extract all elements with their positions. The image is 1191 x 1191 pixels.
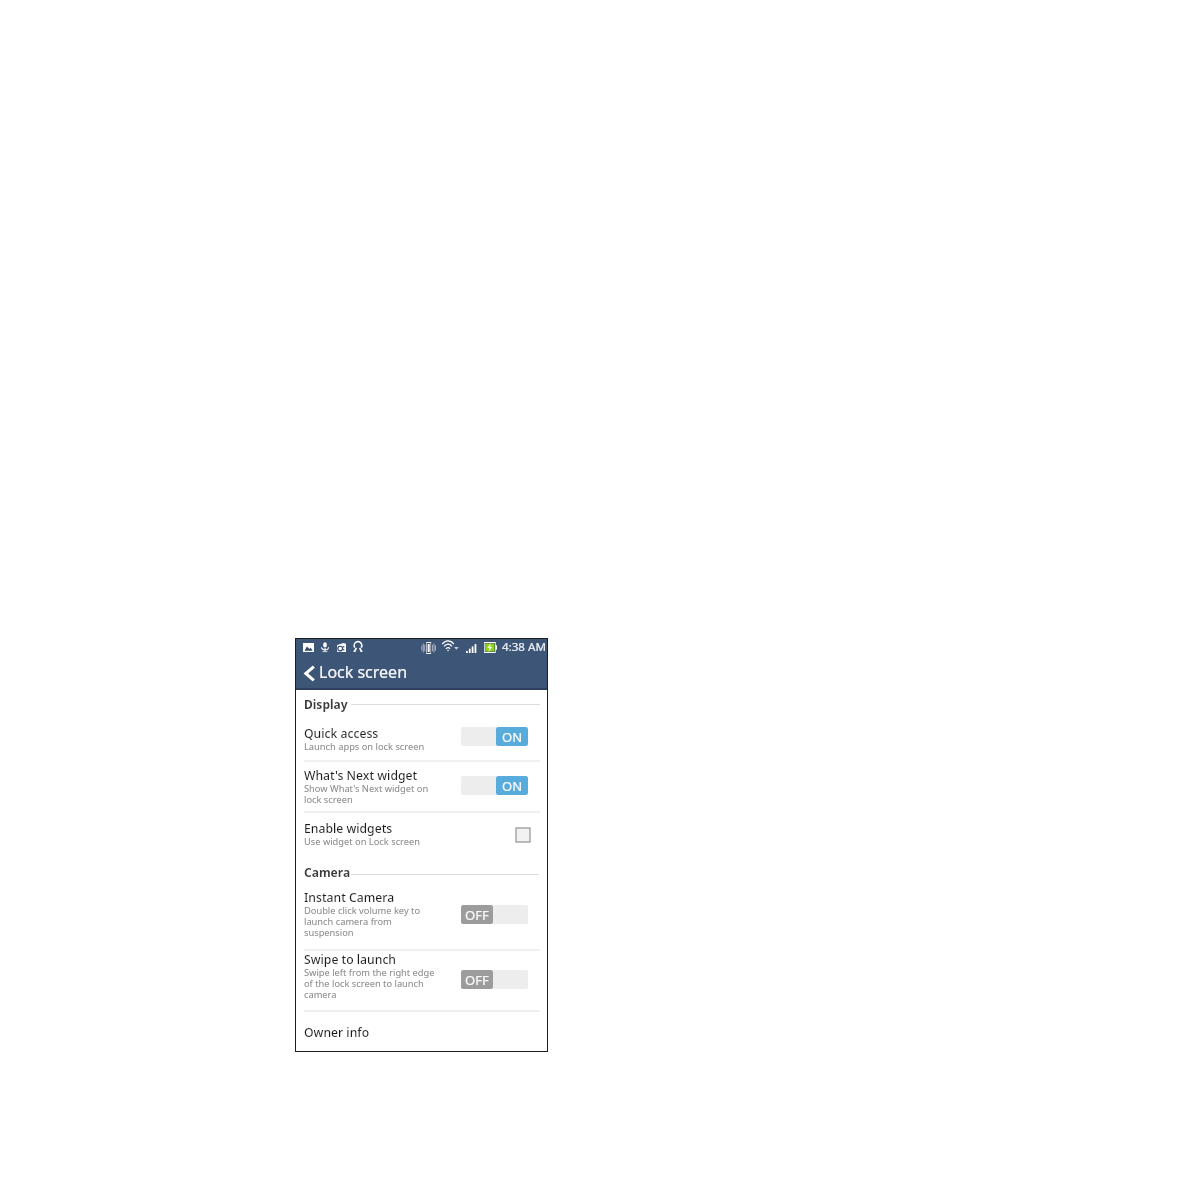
button[interactable]: Switch off xyxy=(461,905,528,924)
staticText: Lock screen xyxy=(319,661,408,683)
staticText: ON xyxy=(502,728,523,746)
staticText: What's Next widget xyxy=(304,767,418,784)
staticText: Swipe to launch xyxy=(304,951,397,968)
staticText: OFF xyxy=(465,971,489,989)
staticText: Camera xyxy=(304,864,351,880)
staticText: Swipe left from the right edge of the lo… xyxy=(304,966,435,1001)
staticText: Instant Camera xyxy=(304,889,395,906)
staticText: Owner info xyxy=(304,1024,370,1041)
staticText: OFF xyxy=(465,906,489,924)
staticText: Quick access xyxy=(304,725,379,742)
button[interactable]: Navigate up: Lock screen xyxy=(296,656,547,690)
button[interactable]: Instant Camera xyxy=(296,880,547,950)
staticText: Double click volume key to launch camera… xyxy=(304,904,421,939)
staticText: Use widget on Lock screen xyxy=(304,835,420,848)
button[interactable]: Switch on xyxy=(461,727,528,746)
button[interactable]: Swipe to launch xyxy=(296,950,547,1010)
staticText: Show What's Next widget on lock screen xyxy=(304,782,429,806)
staticText: Launch apps on lock screen xyxy=(304,740,425,753)
button[interactable]: Owner info xyxy=(296,1011,547,1050)
button[interactable]: Switch on xyxy=(461,776,528,795)
button[interactable]: Switch off xyxy=(461,970,528,989)
button[interactable]: Quick access xyxy=(296,713,547,761)
staticText: Enable widgets xyxy=(304,820,393,837)
staticText: ON xyxy=(502,777,523,795)
button[interactable]: Enable widgets xyxy=(512,824,534,846)
staticText: 4:38 AM xyxy=(502,639,546,655)
button[interactable]: What's Next widget xyxy=(296,761,547,810)
button[interactable]: Enable widgets xyxy=(296,812,547,852)
staticText: Display xyxy=(304,696,348,712)
